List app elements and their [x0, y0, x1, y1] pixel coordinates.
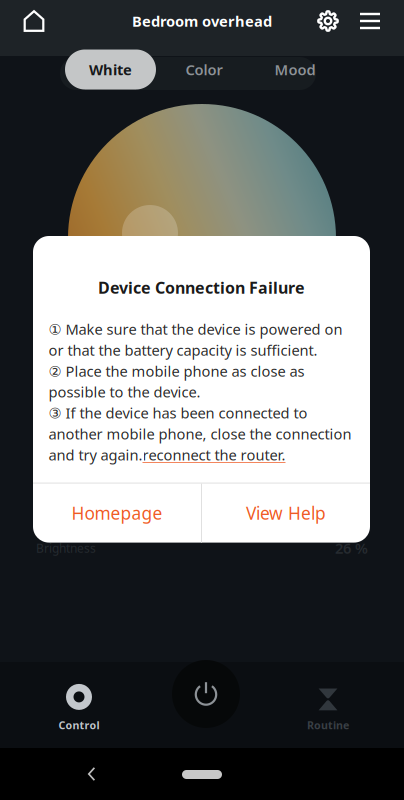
- staticText: ① Make sure that the device is powered o…: [48, 319, 342, 339]
- staticText: Homepage: [71, 502, 162, 525]
- button[interactable]: Routine: [273, 684, 383, 736]
- button[interactable]: Power: [172, 660, 240, 728]
- button[interactable]: Control: [24, 682, 134, 734]
- staticText: Device Connection Failure: [98, 277, 305, 298]
- staticText: Bedroom overhead: [132, 11, 272, 31]
- button[interactable]: White: [65, 49, 156, 89]
- staticText: Mood: [274, 60, 315, 79]
- staticText: View Help: [246, 502, 326, 525]
- staticText: Control: [58, 718, 99, 732]
- staticText: ③ If the device has been connected to: [48, 403, 307, 423]
- button[interactable]: Homepage: [33, 484, 201, 543]
- staticText: Brightness: [36, 540, 96, 556]
- button[interactable]: Home: [14, 1, 54, 41]
- button[interactable]: Settings: [308, 1, 348, 41]
- staticText: another mobile phone, close the connecti…: [48, 424, 351, 444]
- staticText: possible to the device.: [48, 382, 200, 402]
- button[interactable]: Mood: [252, 49, 338, 89]
- staticText: 26 %: [335, 538, 368, 558]
- button[interactable]: Color: [156, 49, 252, 89]
- button[interactable]: Back: [77, 759, 107, 789]
- button[interactable]: View Help: [202, 484, 370, 543]
- button[interactable]: Menu: [350, 1, 390, 41]
- staticText: and try again.reconnect the router.: [48, 445, 285, 465]
- staticText: Routine: [307, 718, 349, 732]
- staticText: or that the battery capacity is sufficie…: [48, 340, 317, 360]
- staticText: Color: [185, 60, 222, 79]
- staticText: White: [89, 60, 132, 79]
- staticText: ② Place the mobile phone as close as: [48, 361, 304, 381]
